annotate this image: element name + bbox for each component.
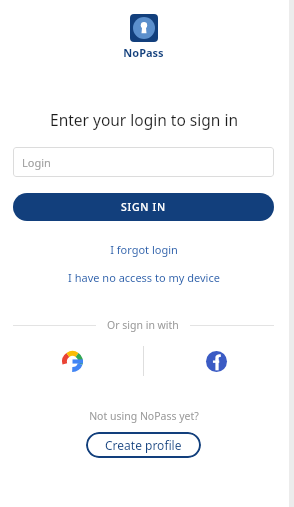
staticText: NoPass: [123, 45, 164, 60]
button[interactable]: SIGN IN: [13, 193, 274, 221]
staticText: Or sign in with: [107, 318, 179, 332]
staticText: Not using NoPass yet?: [89, 409, 199, 423]
button[interactable]: Sign in with Google: [57, 346, 87, 376]
staticText: Login: [22, 155, 51, 170]
other: NoPass logo: [130, 14, 158, 42]
staticText: Create profile: [105, 437, 182, 453]
staticText: I have no access to my device: [68, 270, 220, 285]
staticText: I forgot login: [110, 242, 178, 257]
staticText: SIGN IN: [121, 200, 166, 214]
staticText: Enter your login to sign in: [50, 109, 238, 130]
button[interactable]: I have no access to my device: [60, 269, 228, 286]
button[interactable]: Login: [13, 147, 274, 177]
button[interactable]: Create profile: [86, 432, 201, 458]
button[interactable]: Sign in with Facebook: [201, 346, 231, 376]
button[interactable]: I forgot login: [102, 241, 186, 258]
